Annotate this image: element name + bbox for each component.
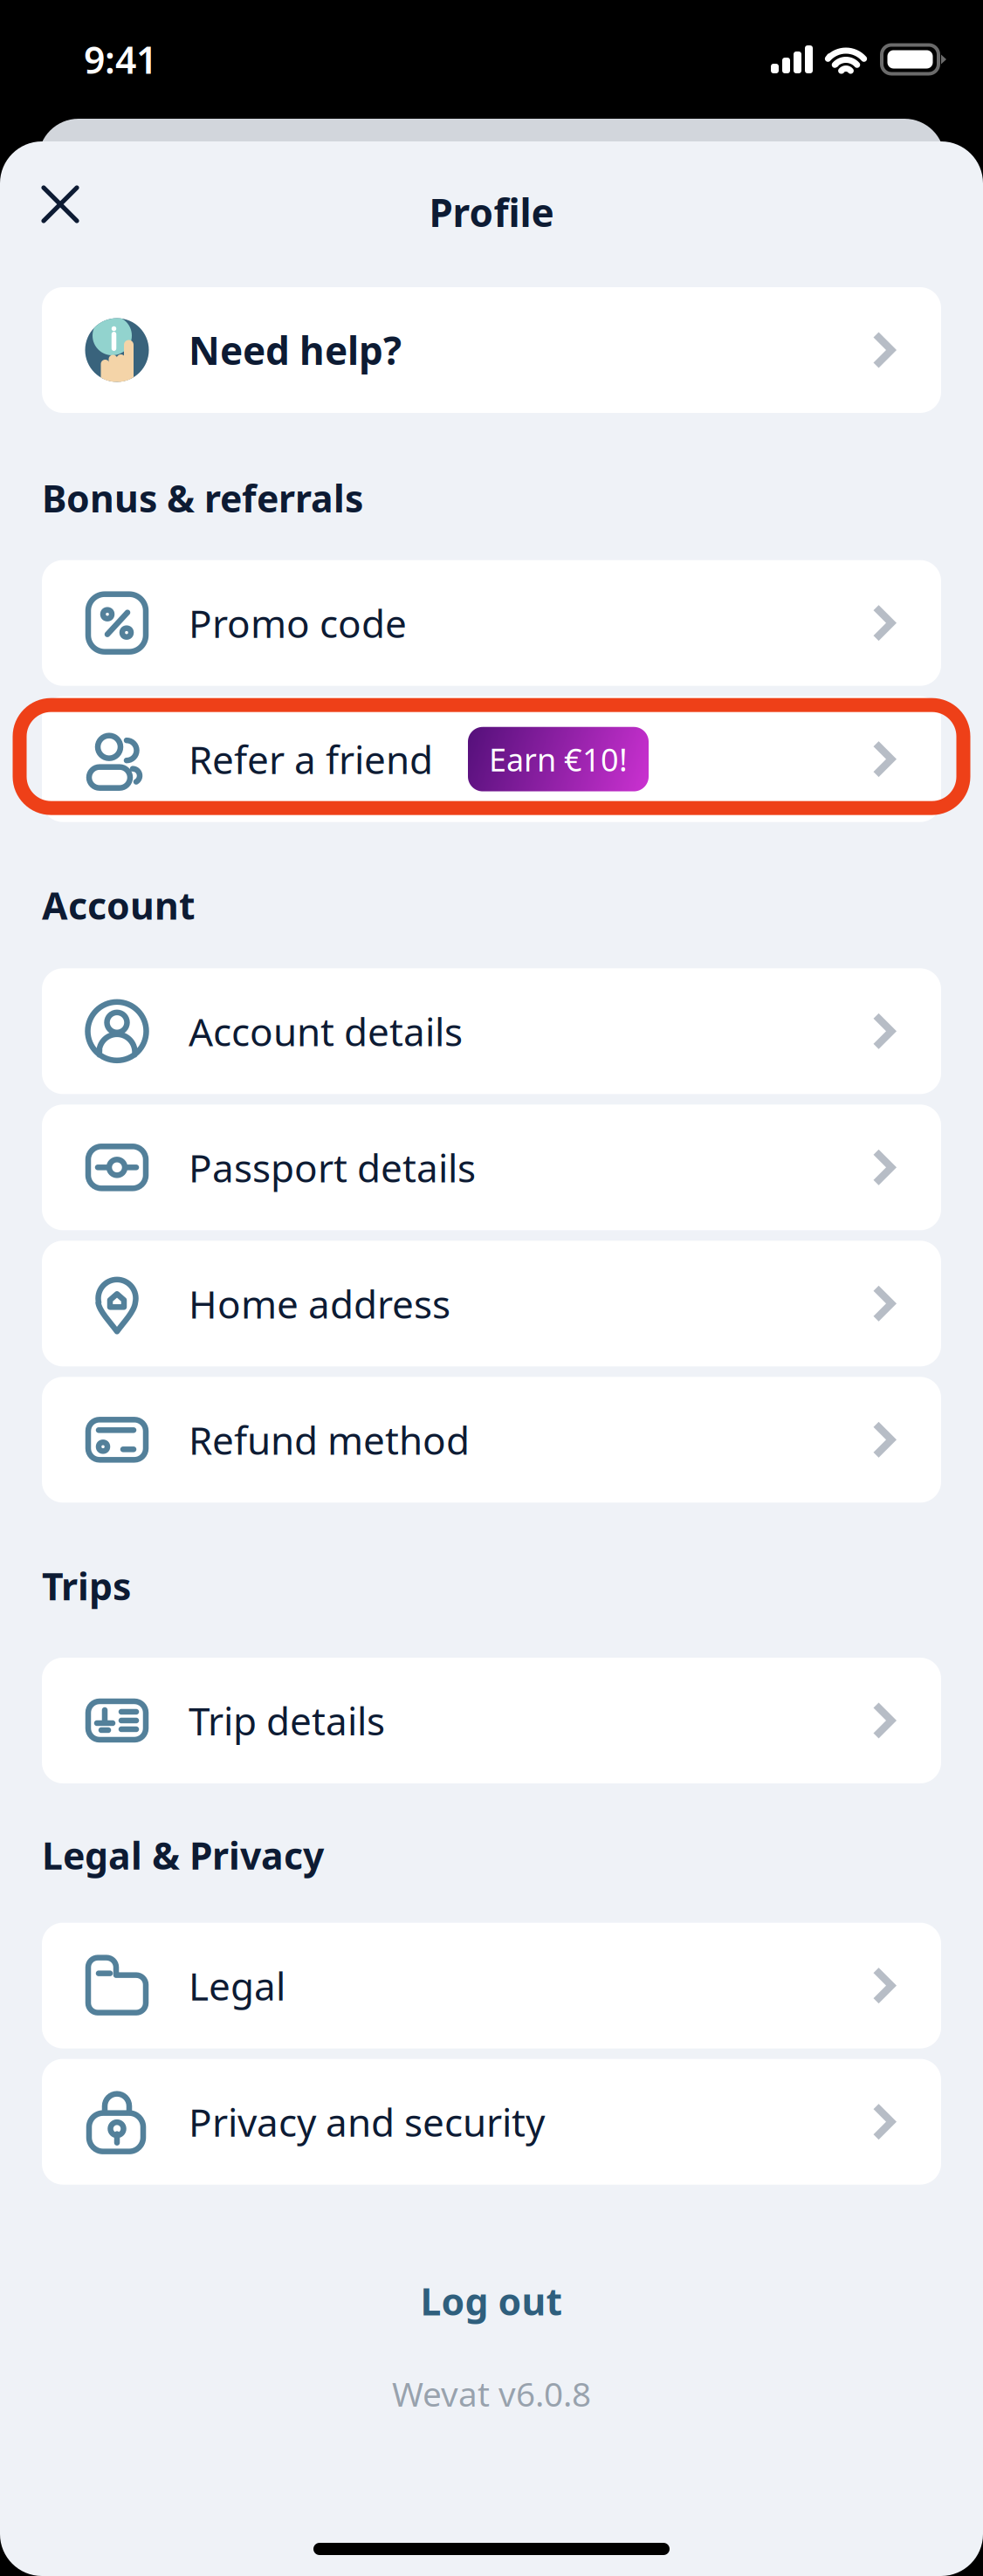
staticText: Passport details xyxy=(189,1142,476,1193)
button[interactable]: Need help? xyxy=(42,287,941,413)
staticText: Legal & Privacy xyxy=(42,1831,324,1880)
staticText: Profile xyxy=(429,187,554,238)
button[interactable]: Refund method xyxy=(42,1377,941,1503)
button[interactable]: Trip details xyxy=(42,1658,941,1783)
staticText: Earn €10! xyxy=(489,738,628,780)
staticText: Account details xyxy=(189,1006,463,1057)
staticText: Log out xyxy=(420,2276,563,2326)
staticText: Refund method xyxy=(189,1414,470,1465)
button[interactable]: Close xyxy=(41,185,79,223)
staticText: Privacy and security xyxy=(189,2096,545,2147)
button[interactable]: Passport details xyxy=(42,1105,941,1230)
button[interactable]: Legal xyxy=(42,1923,941,2048)
staticText: Trip details xyxy=(189,1695,385,1746)
button[interactable]: Log out xyxy=(0,2261,983,2341)
staticText: Refer a friend xyxy=(189,734,433,785)
button[interactable]: Home address xyxy=(42,1241,941,1366)
staticText: Home address xyxy=(189,1278,450,1329)
staticText: Account xyxy=(42,881,196,930)
button[interactable]: Promo code xyxy=(42,560,941,686)
staticText: Legal xyxy=(189,1960,285,2011)
button[interactable]: Refer a friend xyxy=(42,696,941,822)
staticText: Need help? xyxy=(189,325,402,376)
button[interactable]: Account details xyxy=(42,968,941,1094)
staticText: 9:41 xyxy=(84,35,157,84)
button[interactable]: Privacy and security xyxy=(42,2059,941,2185)
staticText: Trips xyxy=(42,1561,131,1611)
staticText: Bonus & referrals xyxy=(42,473,363,523)
staticText: Wevat v6.0.8 xyxy=(392,2371,591,2416)
staticText: Promo code xyxy=(189,597,407,648)
